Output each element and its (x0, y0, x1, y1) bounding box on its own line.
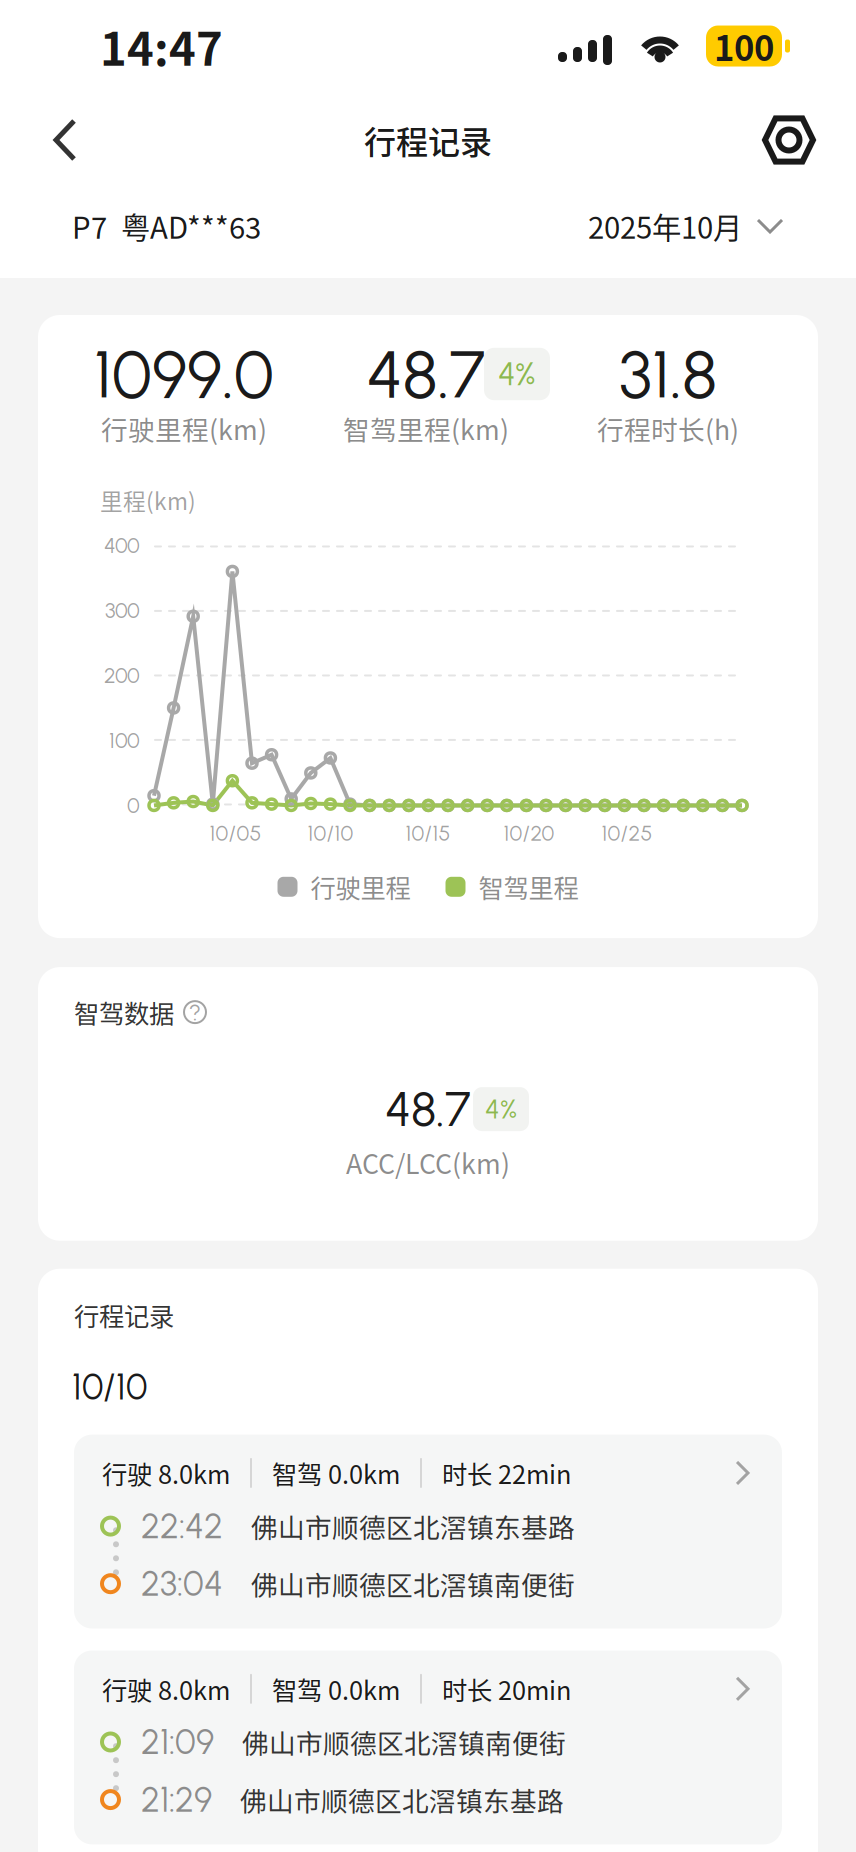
button[interactable]: 行驶 8.0km (74, 1650, 782, 1844)
staticText: 行程时长(h) (597, 409, 739, 448)
staticText: 10/10 (307, 820, 353, 846)
staticText: 智驾里程(km) (343, 409, 509, 448)
button[interactable]: 智驾数据说明 (182, 999, 208, 1025)
staticText: 时长 22min (442, 1455, 571, 1491)
staticText: 10/10 (72, 1365, 147, 1409)
staticText: 里程(km) (100, 484, 196, 516)
button[interactable]: 2025年10月 (588, 205, 784, 247)
button[interactable]: 行驶 8.0km (74, 1435, 782, 1628)
staticText: ACC/LCC(km) (346, 1143, 510, 1182)
staticText: 时长 20min (442, 1670, 571, 1707)
staticText: 48.7 (385, 1080, 471, 1138)
staticText: P7 粤AD***63 (72, 205, 261, 247)
staticText: 10/25 (601, 820, 652, 846)
staticText: 行驶 8.0km (102, 1455, 230, 1491)
staticText: 10/05 (209, 820, 261, 846)
staticText: 10/20 (503, 820, 554, 846)
staticText: ? (189, 998, 201, 1026)
staticText: 23:04 (141, 1563, 223, 1604)
staticText: 21:29 (141, 1779, 212, 1820)
staticText: 行程记录 (364, 117, 492, 163)
staticText: 48.7 (366, 334, 485, 414)
staticText: 行驶里程(km) (101, 409, 267, 448)
staticText: 行程记录 (74, 1297, 174, 1333)
staticText: 佛山市顺德区北滘镇东基路 (251, 1507, 575, 1545)
staticText: 行驶里程 (310, 868, 410, 905)
staticText: 100 (714, 21, 774, 71)
staticText: 佛山市顺德区北滘镇南便街 (251, 1564, 575, 1603)
staticText: 佛山市顺德区北滘镇东基路 (240, 1780, 564, 1819)
staticText: 2025年10月 (588, 205, 742, 247)
staticText: 佛山市顺德区北滘镇南便街 (242, 1723, 566, 1761)
staticText: 22:42 (141, 1505, 223, 1547)
staticText: 14:47 (100, 13, 223, 79)
staticText: 1099.0 (94, 334, 274, 414)
staticText: 200 (104, 663, 140, 688)
staticText: 100 (109, 728, 140, 753)
staticText: 行驶 8.0km (102, 1670, 230, 1707)
staticText: 智驾 0.0km (272, 1670, 400, 1707)
staticText: 31.8 (619, 334, 717, 414)
staticText: 21:09 (141, 1721, 214, 1763)
staticText: 0 (127, 793, 140, 818)
staticText: 10/15 (405, 820, 450, 846)
button[interactable]: 返回 (28, 100, 106, 180)
staticText: 400 (104, 533, 140, 558)
staticText: 智驾数据 (74, 994, 174, 1030)
staticText: 智驾里程 (478, 868, 578, 905)
staticText: 300 (105, 598, 140, 623)
staticText: 4% (498, 355, 536, 393)
staticText: 4% (485, 1093, 517, 1125)
button[interactable]: 设置 (750, 100, 828, 180)
staticText: 智驾 0.0km (272, 1455, 400, 1491)
